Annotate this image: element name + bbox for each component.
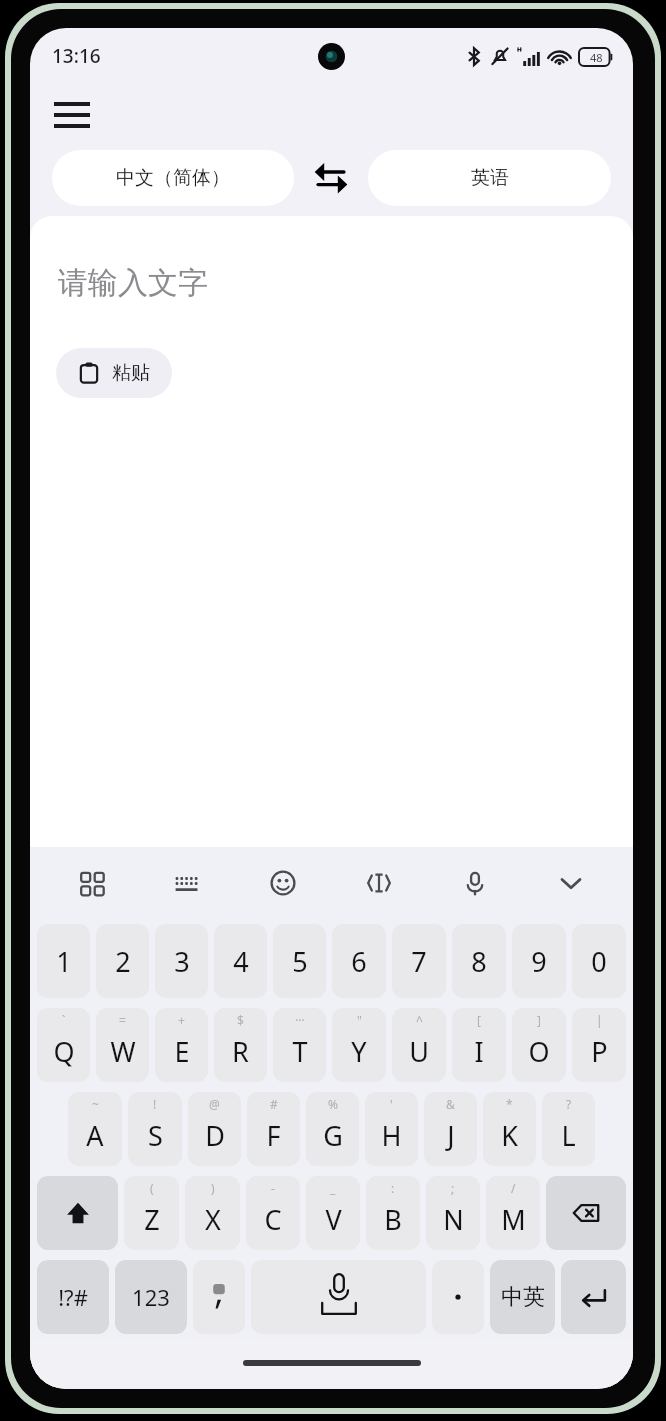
button[interactable]: 2 — [96, 924, 149, 998]
staticText: ··· — [295, 1012, 305, 1028]
button[interactable]: | — [572, 1008, 626, 1082]
button[interactable]: 英语 — [368, 150, 611, 206]
staticText: ~ — [92, 1096, 99, 1112]
button[interactable]: grid — [44, 847, 139, 919]
button[interactable]: Swap languages — [294, 150, 368, 206]
button[interactable]: ( — [124, 1176, 179, 1250]
staticText: ? — [566, 1096, 572, 1112]
staticText: G — [323, 1117, 343, 1154]
button[interactable]: 8 — [452, 924, 506, 998]
button[interactable]: 9 — [512, 924, 566, 998]
button[interactable]: Menu — [46, 94, 98, 136]
staticText: ! — [153, 1096, 157, 1112]
staticText: 123 — [132, 1282, 170, 1312]
staticText: ' — [390, 1096, 393, 1112]
button[interactable]: cursor — [331, 847, 427, 919]
staticText: | — [596, 1012, 603, 1028]
staticText: ] — [537, 1012, 541, 1028]
staticText: 9 — [531, 943, 547, 980]
button[interactable]: emoji — [235, 847, 331, 919]
staticText: 粘贴 — [112, 361, 150, 385]
staticText: ) — [211, 1180, 215, 1196]
button[interactable]: ··· — [273, 1008, 326, 1082]
button[interactable]: ) — [185, 1176, 240, 1250]
staticText: S — [148, 1117, 163, 1154]
staticText: 3 — [174, 943, 190, 980]
button[interactable]: ; — [426, 1176, 480, 1250]
staticText: _ — [330, 1180, 336, 1196]
staticText: 2 — [115, 943, 131, 980]
staticText: V — [325, 1201, 342, 1238]
staticText: 0 — [591, 943, 607, 980]
button[interactable]: 6 — [332, 924, 386, 998]
button[interactable]: dot — [432, 1260, 484, 1334]
staticText: / — [511, 1180, 516, 1196]
button[interactable]: % — [306, 1092, 359, 1166]
button[interactable]: ! — [128, 1092, 182, 1166]
button[interactable]: # — [247, 1092, 300, 1166]
button[interactable]: down — [523, 847, 619, 919]
button[interactable]: kb — [139, 847, 235, 919]
staticText: 中英 — [501, 1283, 545, 1311]
staticText: 6 — [351, 943, 367, 980]
staticText: J — [447, 1117, 455, 1154]
button[interactable]: 7 — [392, 924, 446, 998]
button[interactable]: [ — [452, 1008, 506, 1082]
button[interactable]: 中英 — [490, 1260, 555, 1334]
staticText: D — [205, 1117, 225, 1154]
staticText: ; — [451, 1180, 455, 1196]
staticText: " — [357, 1012, 362, 1028]
button[interactable]: ? — [542, 1092, 595, 1166]
button[interactable]: 中文（简体） — [52, 150, 294, 206]
staticText: 13:16 — [52, 43, 101, 69]
button[interactable]: 4 — [214, 924, 267, 998]
staticText: A — [86, 1117, 104, 1154]
button[interactable]: $ — [214, 1008, 267, 1082]
button[interactable]: 粘贴 — [56, 348, 172, 398]
button[interactable]: comma — [193, 1260, 245, 1334]
button[interactable]: _ — [306, 1176, 360, 1250]
button[interactable]: 1 — [37, 924, 90, 998]
button[interactable]: - — [246, 1176, 300, 1250]
button[interactable]: mic — [427, 847, 523, 919]
button[interactable]: enter — [561, 1260, 626, 1334]
button[interactable]: " — [332, 1008, 386, 1082]
staticText: [ — [477, 1012, 481, 1028]
button[interactable]: 0 — [572, 924, 626, 998]
button[interactable]: shift — [37, 1176, 118, 1250]
button[interactable]: & — [424, 1092, 477, 1166]
button[interactable]: 123 — [115, 1260, 187, 1334]
button[interactable]: ' — [365, 1092, 418, 1166]
staticText: 4 — [233, 943, 249, 980]
button[interactable]: space — [251, 1260, 426, 1334]
staticText: Y — [351, 1033, 367, 1070]
button[interactable]: / — [486, 1176, 540, 1250]
staticText: K — [501, 1117, 518, 1154]
button[interactable]: = — [96, 1008, 149, 1082]
staticText: @ — [209, 1096, 220, 1112]
button[interactable]: : — [366, 1176, 420, 1250]
button[interactable]: 5 — [273, 924, 326, 998]
staticText: L — [561, 1117, 576, 1154]
staticText: U — [409, 1033, 429, 1070]
staticText: I — [474, 1033, 484, 1070]
staticText: Z — [144, 1201, 160, 1238]
button[interactable]: @ — [188, 1092, 241, 1166]
staticText: 1 — [56, 943, 72, 980]
staticText: $ — [237, 1012, 244, 1028]
button[interactable]: ` — [37, 1008, 90, 1082]
button[interactable]: ] — [512, 1008, 566, 1082]
button[interactable]: del — [546, 1176, 626, 1250]
staticText: X — [205, 1201, 221, 1238]
button[interactable]: !?# — [37, 1260, 109, 1334]
button[interactable]: + — [155, 1008, 208, 1082]
staticText: 5 — [292, 943, 308, 980]
button[interactable]: ~ — [68, 1092, 122, 1166]
button[interactable]: ^ — [392, 1008, 446, 1082]
button[interactable]: * — [483, 1092, 536, 1166]
button[interactable]: 3 — [155, 924, 208, 998]
staticText: F — [266, 1117, 281, 1154]
staticText: * — [506, 1096, 513, 1112]
staticText: O — [528, 1033, 550, 1070]
staticText: P — [591, 1033, 608, 1070]
